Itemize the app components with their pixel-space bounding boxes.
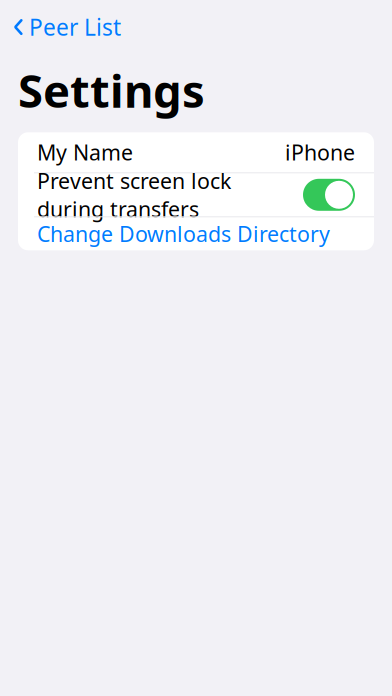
staticText: Peer List <box>29 12 121 42</box>
button[interactable]: Peer List <box>0 0 131 48</box>
button[interactable]: Change Downloads Directory <box>18 217 374 250</box>
button[interactable]: Prevent screen lock during transfers <box>18 173 374 216</box>
staticText: iPhone <box>285 138 355 166</box>
staticText: My Name <box>37 138 133 166</box>
staticText: Settings <box>18 60 205 120</box>
staticText: Prevent screen lock during transfers <box>37 166 231 223</box>
staticText: Change Downloads Directory <box>37 220 330 248</box>
button[interactable]: My Name <box>18 132 374 172</box>
